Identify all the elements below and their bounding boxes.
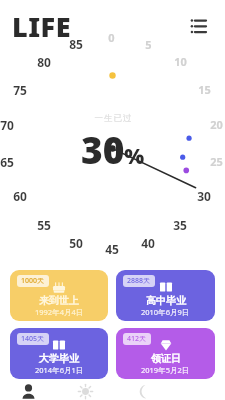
staticText: 10 [174,54,187,69]
staticText: 2019年5月2日 [141,365,190,375]
staticText: 25 [210,154,223,169]
staticText: 2888天 [127,276,151,286]
button[interactable]: 1000天 [10,270,108,321]
staticText: 大学毕业 [39,352,79,365]
staticText: 30% [81,124,145,174]
button[interactable]: Profile [0,382,57,400]
staticText: 来到世上 [39,294,79,307]
staticText: 20 [210,117,223,132]
staticText: 1000天 [21,276,45,286]
button[interactable]: 2888天 [116,270,215,321]
staticText: 领证日 [151,352,181,365]
staticText: 80 [37,54,51,70]
staticText: 412天 [127,334,147,344]
staticText: 2010年6月9日 [141,307,190,317]
staticText: 50 [69,235,83,251]
staticText: 85 [69,36,83,52]
staticText: 55 [37,217,51,233]
staticText: 40 [141,235,155,251]
button[interactable]: 412天 [116,328,215,379]
staticText: 35 [173,217,187,233]
staticText: 0 [108,30,115,45]
staticText: 1992年4月4日 [35,307,84,317]
button[interactable]: Night [113,382,169,400]
staticText: 一生已过 [94,113,132,124]
staticText: 70 [0,117,14,133]
staticText: 15 [198,82,211,97]
button[interactable]: List [185,13,211,39]
staticText: 高中毕业 [146,294,186,307]
staticText: LIFE [12,8,71,45]
button[interactable]: Day [57,382,113,400]
button[interactable]: 1405天 [10,328,108,379]
staticText: 75 [13,82,27,98]
staticText: 60 [13,188,27,204]
staticText: 30 [197,188,211,204]
staticText: 45 [105,241,119,257]
staticText: 1405天 [21,334,45,344]
staticText: 65 [0,154,14,170]
staticText: 2014年6月1日 [35,365,84,375]
staticText: 5 [145,37,152,52]
